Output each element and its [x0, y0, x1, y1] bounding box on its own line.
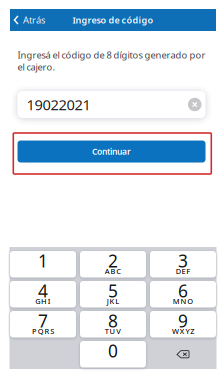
button[interactable]: 4	[10, 281, 76, 307]
staticText: MNO	[173, 296, 193, 306]
staticText: 2	[108, 249, 118, 272]
staticText: JKL	[107, 296, 119, 306]
staticText: el cajero.	[17, 60, 55, 73]
staticText: 6	[178, 279, 188, 302]
staticText: 9	[178, 309, 188, 332]
staticText: 19022021	[26, 94, 90, 114]
button[interactable]: 3	[150, 251, 216, 277]
button[interactable]: 6	[150, 281, 216, 307]
button[interactable]: 7	[10, 311, 76, 337]
staticText: 8	[108, 309, 118, 332]
button[interactable]: Continuar	[17, 140, 205, 162]
staticText: Continuar	[92, 146, 131, 157]
staticText: 4	[38, 279, 48, 302]
staticText: Ingresá el código de 8 dígitos generado …	[17, 48, 205, 61]
staticText: 7	[38, 309, 48, 332]
button[interactable]: 0	[80, 341, 146, 367]
button[interactable]: 8	[80, 311, 146, 337]
staticText: 3	[178, 249, 188, 272]
button[interactable]: Atrás	[10, 9, 53, 31]
staticText: 1	[38, 249, 48, 272]
staticText: 5	[108, 279, 118, 302]
staticText: ABC	[105, 266, 121, 276]
staticText: DEF	[176, 266, 190, 276]
button[interactable]: 1	[10, 251, 76, 277]
staticText: 0	[108, 339, 118, 362]
button[interactable]: 5	[80, 281, 146, 307]
staticText: Ingreso de código	[72, 14, 153, 26]
button[interactable]: Borrar	[150, 341, 216, 367]
staticText: GHI	[35, 296, 51, 306]
button[interactable]: 9	[150, 311, 216, 337]
staticText: TUV	[105, 326, 121, 336]
staticText: WXYZ	[172, 326, 194, 336]
staticText: PQRS	[32, 326, 54, 336]
button[interactable]: 2	[80, 251, 146, 277]
button[interactable]: Borrar texto	[188, 98, 201, 111]
staticText: Atrás	[23, 14, 45, 26]
